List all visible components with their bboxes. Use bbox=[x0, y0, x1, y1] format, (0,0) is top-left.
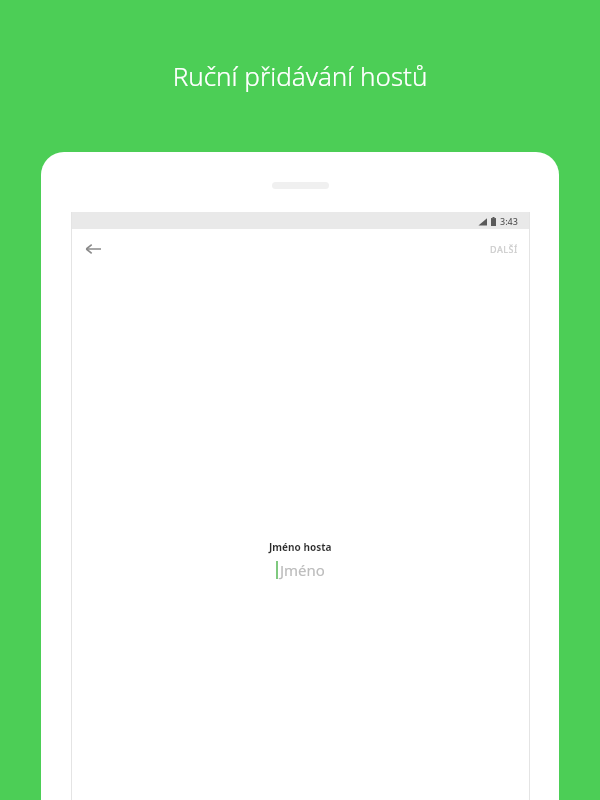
staticText: DALŠÍ bbox=[490, 243, 518, 255]
staticText: Jméno hosta bbox=[269, 540, 332, 554]
staticText: 3:43 bbox=[500, 215, 518, 227]
button[interactable]: Jméno bbox=[276, 560, 325, 580]
button[interactable]: Back bbox=[77, 233, 109, 265]
button[interactable]: DALŠÍ bbox=[478, 235, 530, 263]
staticText: Jméno bbox=[280, 560, 325, 580]
staticText: Ruční přidávání hostů bbox=[0, 58, 600, 93]
